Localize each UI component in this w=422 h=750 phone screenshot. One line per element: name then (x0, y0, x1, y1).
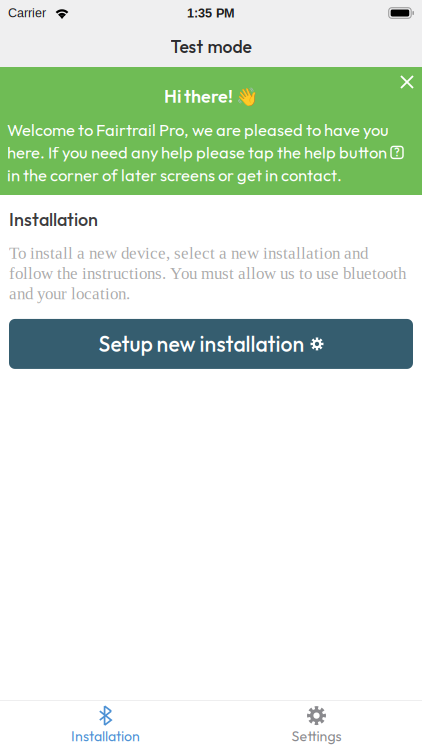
staticText: To install a new device, select a new in… (9, 244, 406, 303)
button[interactable]: Installation (0, 701, 211, 750)
staticText: Hi there! 👋 (164, 85, 258, 107)
staticText: Welcome to Fairtrail Pro, we are pleased… (7, 119, 389, 140)
staticText: Installation (9, 208, 98, 231)
staticText: 1:35 PM (187, 6, 235, 20)
button[interactable]: Settings (211, 701, 422, 750)
staticText: in the corner of later screens or get in… (7, 165, 342, 185)
staticText: Setup new installation (98, 331, 304, 357)
staticText: Installation (71, 727, 140, 745)
staticText: ? (394, 145, 400, 159)
button[interactable]: Setup new installation (9, 319, 413, 369)
staticText: Test mode (170, 35, 251, 58)
staticText: here. If you need any help please tap th… (7, 142, 387, 163)
staticText: Carrier (8, 6, 46, 20)
button[interactable]: Close (392, 67, 422, 97)
staticText: Settings (291, 727, 341, 745)
